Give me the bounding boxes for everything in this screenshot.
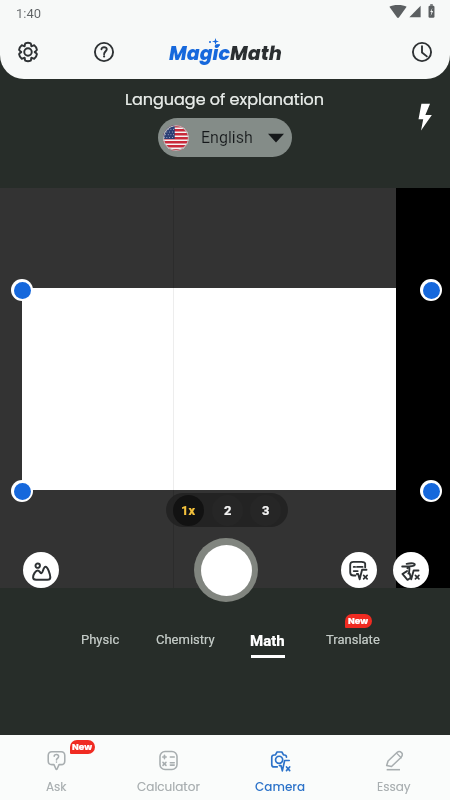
button[interactable]: 2 <box>212 495 243 526</box>
button[interactable]: Flash <box>406 98 444 136</box>
button[interactable]: Math <box>242 626 293 664</box>
button[interactable]: Essay <box>337 735 450 800</box>
staticText: Language of explanation <box>125 88 325 110</box>
staticText: Math <box>250 632 285 650</box>
staticText: Ask <box>46 778 67 795</box>
button[interactable]: Draw a math problem <box>393 552 429 588</box>
staticText: Math <box>230 40 282 67</box>
staticText: New <box>348 615 369 628</box>
button[interactable]: Help <box>85 33 123 71</box>
staticText: Camera <box>255 778 306 795</box>
button[interactable]: Settings <box>9 33 47 71</box>
button[interactable]: English <box>158 118 292 157</box>
button[interactable]: Calculator <box>112 735 224 800</box>
staticText: Translate <box>326 632 380 647</box>
staticText: Physic <box>81 632 120 647</box>
button[interactable]: Chemistry <box>148 626 223 653</box>
button[interactable]: History <box>403 33 441 71</box>
staticText: New <box>72 741 93 754</box>
staticText: 1:40 <box>16 6 42 21</box>
staticText: Calculator <box>137 778 200 795</box>
button[interactable]: Translate <box>318 626 388 653</box>
button[interactable]: Gallery <box>23 552 59 588</box>
button[interactable]: Ask a math question <box>341 552 377 588</box>
staticText: Chemistry <box>156 632 215 647</box>
button[interactable]: 3 <box>250 495 281 526</box>
button[interactable]: 1x <box>173 495 204 526</box>
staticText: 2 <box>224 503 232 518</box>
staticText: English <box>201 128 253 147</box>
staticText: 1x <box>181 503 196 518</box>
button[interactable]: Camera <box>224 735 337 800</box>
button[interactable]: Take photo <box>194 538 258 602</box>
staticText: 3 <box>262 503 270 518</box>
button[interactable]: Physic <box>73 626 128 653</box>
staticText: Essay <box>377 778 411 795</box>
staticText: Magic <box>169 40 230 67</box>
button[interactable]: New <box>0 735 112 800</box>
